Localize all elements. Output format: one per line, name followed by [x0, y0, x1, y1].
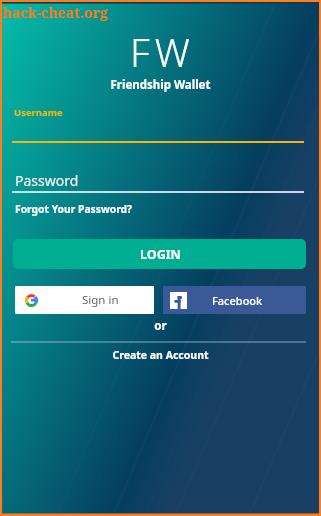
staticText: Password: [15, 171, 79, 190]
staticText: Sign in: [82, 292, 119, 308]
button[interactable]: LOGIN: [13, 239, 306, 269]
staticText: LOGIN: [140, 246, 181, 263]
staticText: Facebook: [212, 293, 263, 308]
button[interactable]: Facebook: [163, 286, 306, 314]
button[interactable]: Forgot Your Password?: [15, 202, 132, 216]
staticText: hack-cheat.org: [3, 3, 109, 22]
other: Google: [25, 294, 38, 307]
staticText: FW: [2, 25, 321, 78]
staticText: Friendship Wallet: [0, 77, 321, 93]
button[interactable]: Create an Account: [0, 348, 321, 362]
staticText: or: [0, 318, 321, 334]
staticText: Username: [14, 106, 63, 119]
button[interactable]: Google: [15, 286, 154, 314]
